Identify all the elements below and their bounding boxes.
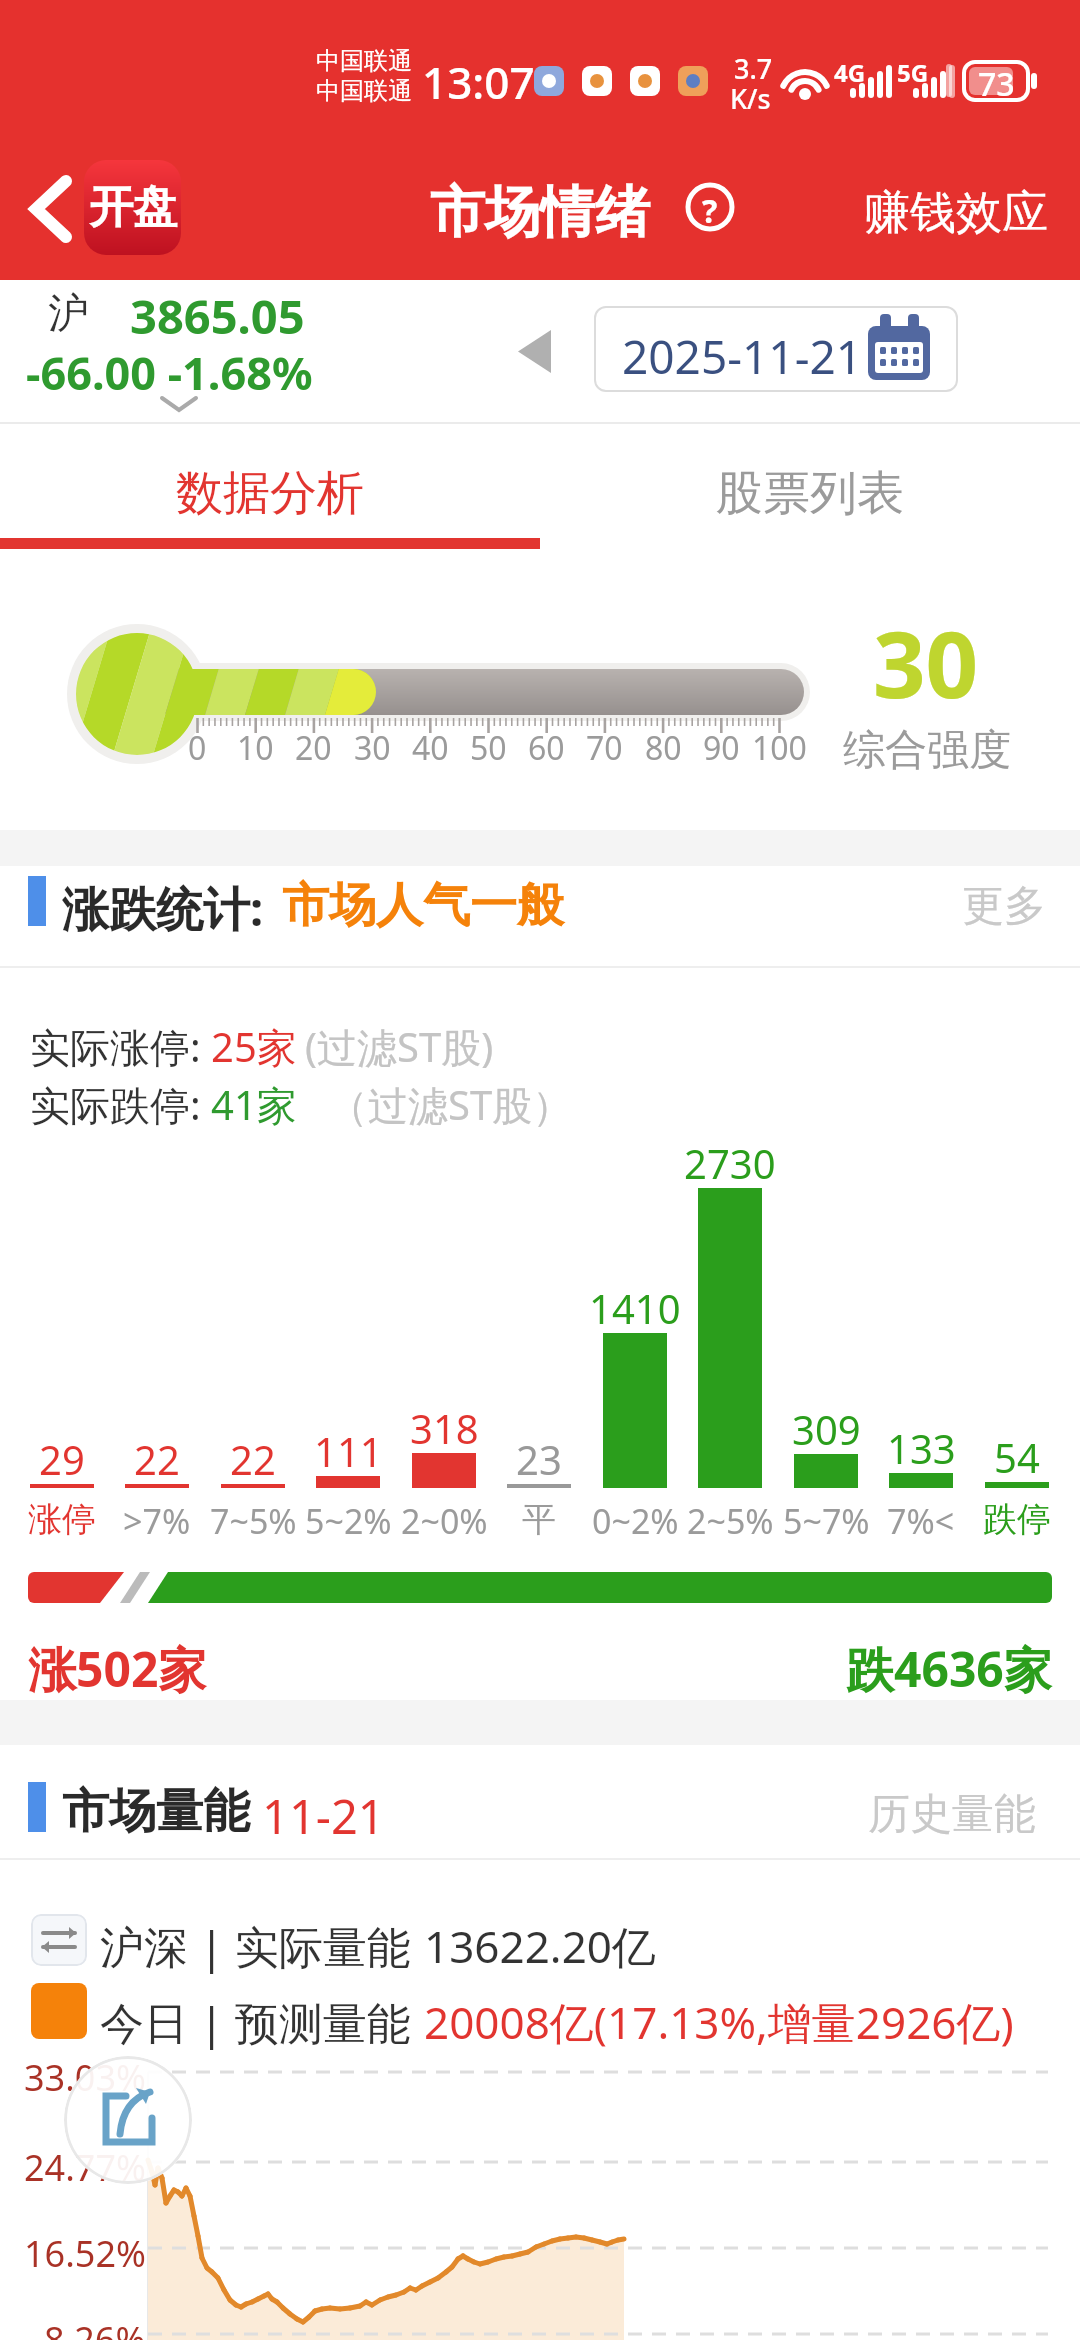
staticText: 40 bbox=[412, 726, 449, 770]
staticText: K/s bbox=[730, 80, 771, 117]
staticText: 5~7% bbox=[783, 1498, 870, 1544]
staticText: 7%< bbox=[887, 1498, 955, 1544]
staticText: （过滤ST股） bbox=[328, 1077, 573, 1132]
staticText: 23 bbox=[516, 1432, 562, 1486]
staticText: 70 bbox=[586, 726, 623, 770]
staticText: 25家 bbox=[211, 1019, 297, 1074]
staticText: 60 bbox=[528, 726, 565, 770]
button[interactable] bbox=[540, 424, 1080, 550]
staticText: 开盘 bbox=[89, 180, 177, 235]
staticText: 市场人气一般 bbox=[282, 876, 564, 935]
staticText: 50 bbox=[470, 726, 507, 770]
button[interactable] bbox=[594, 306, 958, 392]
staticText: 实际跌停: bbox=[30, 1077, 201, 1132]
staticText: 22 bbox=[134, 1432, 180, 1486]
staticText: 2730 bbox=[684, 1136, 776, 1190]
staticText: 3.7 bbox=[734, 50, 773, 87]
staticText: 30 bbox=[873, 600, 979, 725]
staticText: 5~2% bbox=[305, 1498, 392, 1544]
staticText: 市场情绪 bbox=[430, 178, 650, 247]
staticText: 1410 bbox=[589, 1281, 681, 1335]
staticText: 中国联通 bbox=[316, 76, 412, 106]
staticText: 20 bbox=[295, 726, 332, 770]
staticText: 涨停 bbox=[28, 1498, 96, 1541]
staticText: 54 bbox=[994, 1430, 1040, 1484]
staticText: 涨跌统计: bbox=[62, 876, 264, 940]
staticText: 沪深 | 实际量能 bbox=[100, 1916, 412, 1976]
staticText: 24.77% bbox=[24, 2143, 146, 2192]
staticText: 5G bbox=[897, 56, 929, 89]
staticText: 0~2% bbox=[592, 1498, 679, 1544]
staticText: 实际涨停: bbox=[30, 1019, 201, 1074]
staticText: 跌停 bbox=[983, 1498, 1051, 1541]
staticText: 11-21 bbox=[262, 1784, 385, 1848]
staticText: 2025-11-21 bbox=[622, 325, 863, 388]
staticText: 历史量能 bbox=[868, 1788, 1036, 1841]
staticText: >7% bbox=[123, 1498, 191, 1544]
staticText: 3865.05 bbox=[130, 284, 305, 348]
staticText: 10 bbox=[237, 726, 274, 770]
staticText: 中国联通 bbox=[316, 46, 412, 76]
staticText: 80 bbox=[645, 726, 682, 770]
staticText: 4G bbox=[834, 56, 866, 89]
staticText: 平 bbox=[522, 1498, 556, 1541]
staticText: 73 bbox=[978, 62, 1015, 106]
staticText: 股票列表 bbox=[716, 464, 904, 523]
staticText: 22 bbox=[230, 1432, 276, 1486]
staticText: 7~5% bbox=[210, 1498, 297, 1544]
staticText: 20008亿(17.13%,增量2926亿) bbox=[424, 1992, 1014, 2052]
button[interactable]: 开盘 bbox=[84, 160, 181, 255]
staticText: ? bbox=[702, 189, 718, 233]
staticText: 赚钱效应 bbox=[864, 184, 1048, 242]
button[interactable]: 赚钱效应 bbox=[864, 184, 1048, 242]
staticText: 沪 bbox=[48, 288, 89, 340]
button[interactable]: 历史量能 bbox=[868, 1788, 1036, 1841]
staticText: 111 bbox=[314, 1424, 383, 1478]
staticText: 41家 bbox=[211, 1077, 297, 1132]
staticText: (过滤ST股) bbox=[305, 1019, 494, 1074]
button[interactable] bbox=[0, 424, 540, 550]
staticText: 数据分析 bbox=[176, 464, 364, 523]
staticText: 8.26% bbox=[44, 2315, 146, 2340]
staticText: 100 bbox=[752, 726, 807, 770]
button[interactable]: 更多 bbox=[962, 880, 1046, 933]
button[interactable] bbox=[686, 183, 734, 231]
staticText: 33.03% bbox=[24, 2053, 146, 2102]
staticText: 综合强度 bbox=[843, 724, 1011, 777]
staticText: 30 bbox=[354, 726, 391, 770]
staticText: 29 bbox=[39, 1432, 85, 1486]
staticText: 2~5% bbox=[687, 1498, 774, 1544]
staticText: 更多 bbox=[962, 880, 1046, 933]
staticText: 318 bbox=[410, 1401, 479, 1455]
button[interactable] bbox=[518, 330, 552, 374]
staticText: 90 bbox=[703, 726, 740, 770]
staticText: 16.52% bbox=[24, 2229, 146, 2278]
staticText: 2~0% bbox=[401, 1498, 488, 1544]
staticText: 13:07 bbox=[422, 52, 535, 112]
staticText: 13622.20亿 bbox=[424, 1916, 656, 1976]
staticText: 涨502家 bbox=[28, 1636, 207, 1702]
staticText: 今日 | 预测量能 bbox=[100, 1992, 412, 2052]
staticText: 0 bbox=[188, 726, 207, 770]
button[interactable] bbox=[64, 2056, 192, 2184]
staticText: 市场量能 bbox=[62, 1782, 250, 1841]
button[interactable] bbox=[20, 165, 90, 255]
staticText: 133 bbox=[887, 1421, 956, 1475]
staticText: 309 bbox=[792, 1402, 861, 1456]
staticText: 跌4636家 bbox=[846, 1636, 1052, 1702]
staticText: -66.00 -1.68% bbox=[26, 342, 313, 403]
